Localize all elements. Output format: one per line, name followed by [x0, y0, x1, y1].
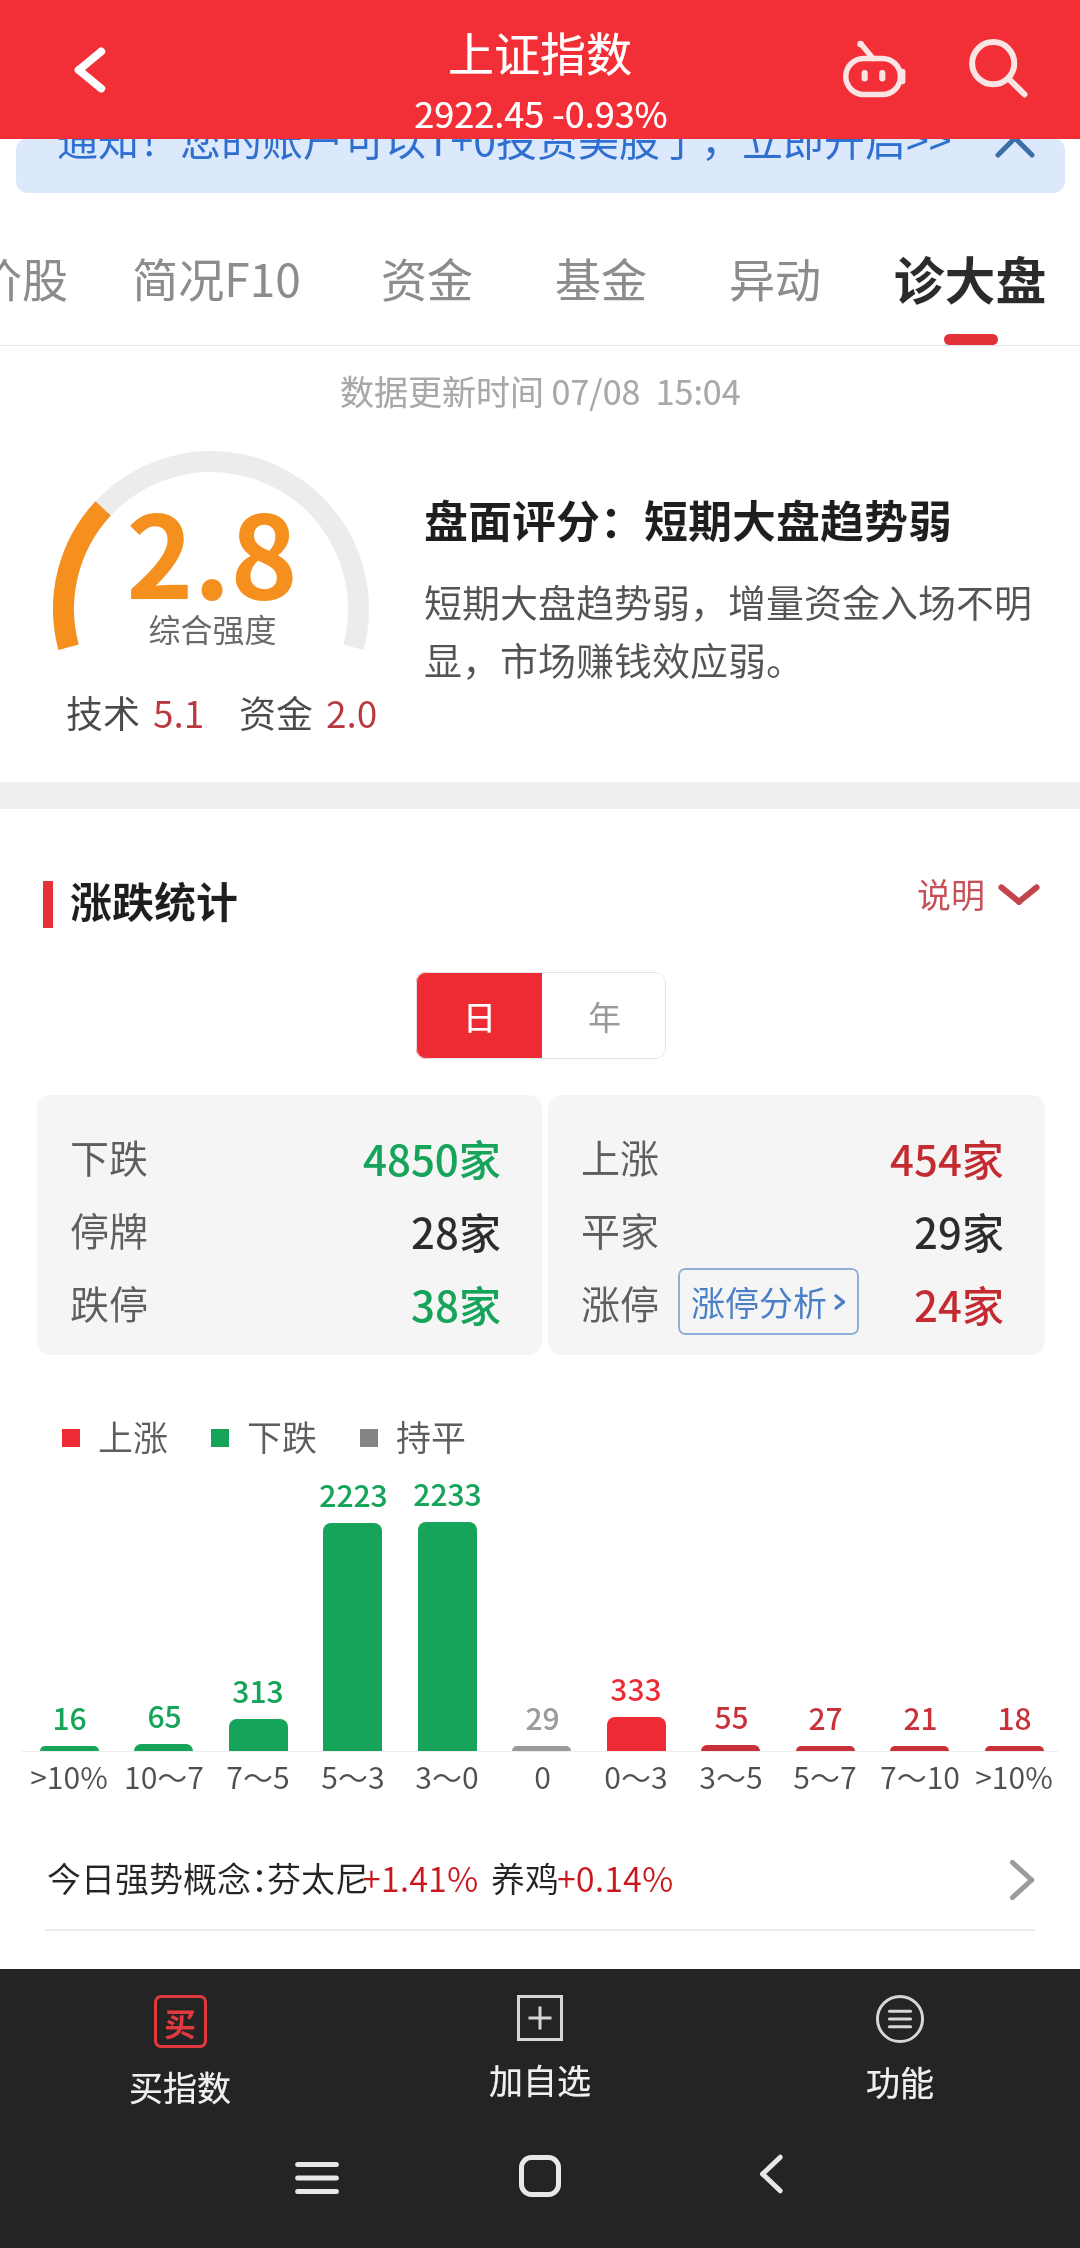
button[interactable]: 基金 — [513, 226, 689, 347]
staticText: 18 — [997, 1695, 1032, 1738]
staticText: 基金 — [555, 244, 647, 311]
button[interactable]: 今日强势概念： — [0, 1840, 1080, 1920]
staticText: +0.14% — [557, 1853, 674, 1902]
staticText: 涨停 — [581, 1274, 660, 1330]
staticText: 今日强势概念： — [47, 1853, 285, 1902]
staticText: 3～5 — [699, 1754, 763, 1797]
staticText: 3～0 — [415, 1754, 479, 1797]
button[interactable]: 买 — [90, 1981, 270, 2116]
staticText: 通知！您的账户可以T+0投资美股了，立即开启>> — [57, 138, 952, 163]
staticText: 加自选 — [489, 2055, 591, 2104]
button[interactable]: Back — [750, 2153, 792, 2195]
staticText: 停牌 — [70, 1201, 149, 1257]
button[interactable]: 资金 — [339, 226, 515, 347]
staticText: 0 — [534, 1754, 551, 1797]
staticText: 4850家 — [363, 1127, 501, 1188]
staticText: 诊大盘 — [893, 241, 1047, 315]
staticText: 下跌 — [70, 1128, 149, 1184]
staticText: 2233 — [413, 1471, 482, 1514]
button[interactable]: 涨停分析 — [691, 1268, 853, 1335]
staticText: 涨跌统计 — [70, 869, 239, 930]
other: More — [1000, 1858, 1044, 1902]
staticText: 21 — [903, 1695, 938, 1738]
staticText: 跌停 — [70, 1274, 149, 1330]
staticText: >10% — [30, 1754, 108, 1797]
button[interactable]: Search — [962, 32, 1038, 108]
staticText: 27 — [808, 1695, 843, 1738]
staticText: 333 — [610, 1666, 662, 1709]
button[interactable]: 加自选 — [450, 1981, 630, 2116]
staticText: 功能 — [866, 2057, 934, 2106]
button[interactable]: 日 — [416, 972, 542, 1059]
staticText: 芬太尼 — [267, 1853, 369, 1902]
staticText: 上涨 — [581, 1128, 660, 1184]
staticText: 综合强度 — [148, 605, 277, 651]
button[interactable]: Home — [519, 2155, 561, 2197]
staticText: 上涨 — [98, 1410, 169, 1461]
staticText: 涨停分析 — [691, 1277, 827, 1326]
staticText: 异动 — [729, 244, 821, 311]
button[interactable]: 诊大盘 — [882, 226, 1058, 347]
button[interactable]: 年 — [542, 972, 666, 1059]
staticText: 2.8 — [126, 467, 298, 632]
button[interactable]: 简况F10 — [128, 226, 304, 347]
staticText: 平家 — [581, 1201, 660, 1257]
staticText: 7～5 — [226, 1754, 290, 1797]
button[interactable]: 说明 — [917, 862, 1039, 924]
button[interactable]: Recent apps — [296, 2157, 338, 2199]
staticText: 2223 — [319, 1472, 388, 1515]
staticText: 454家 — [890, 1127, 1004, 1188]
button[interactable]: 价股 — [0, 226, 110, 347]
staticText: 年 — [588, 992, 621, 1040]
staticText: 16 — [52, 1695, 87, 1738]
staticText: 0～3 — [604, 1754, 668, 1797]
staticText: 10～7 — [124, 1754, 204, 1797]
staticText: 313 — [232, 1668, 284, 1711]
staticText: 资金 — [239, 685, 313, 739]
staticText: 2.0 — [326, 685, 378, 739]
staticText: 38家 — [411, 1273, 501, 1334]
staticText: 28家 — [411, 1200, 501, 1261]
staticText: 说明 — [917, 869, 985, 918]
staticText: 资金 — [381, 244, 473, 311]
staticText: 买指数 — [129, 2062, 231, 2111]
staticText: 日 — [463, 992, 496, 1040]
staticText: 盘面评分：短期大盘趋势弱 — [424, 487, 952, 551]
staticText: 29 — [525, 1695, 560, 1738]
staticText: 5.1 — [153, 685, 205, 739]
button[interactable]: 功能 — [810, 1981, 990, 2116]
staticText: 简况F10 — [132, 244, 301, 311]
staticText: 5～3 — [321, 1754, 385, 1797]
staticText: >10% — [975, 1754, 1053, 1797]
button[interactable]: Close notification — [998, 138, 1032, 155]
staticText: 55 — [714, 1694, 749, 1737]
staticText: 7～10 — [880, 1754, 960, 1797]
staticText: 价股 — [0, 244, 68, 311]
staticText: 持平 — [396, 1410, 467, 1461]
staticText: 上证指数 — [448, 18, 632, 85]
staticText: +1.41% — [362, 1853, 479, 1902]
staticText: 短期大盘趋势弱，增量资金入场不明显，市场赚钱效应弱。 — [424, 573, 1036, 686]
staticText: 下跌 — [247, 1410, 318, 1461]
staticText: 29家 — [914, 1200, 1004, 1261]
staticText: 买 — [164, 1999, 197, 2045]
button[interactable]: 通知！您的账户可以T+0投资美股了，立即开启>> — [16, 138, 1065, 193]
staticText: 5～7 — [793, 1754, 857, 1797]
staticText: 2922.45 -0.93% — [414, 86, 668, 138]
staticText: 数据更新时间 07/08 15:04 — [340, 366, 741, 415]
button[interactable]: 异动 — [687, 226, 863, 347]
button[interactable]: AI assistant — [838, 32, 914, 108]
staticText: 65 — [147, 1693, 182, 1736]
button[interactable]: Back — [0, 0, 180, 139]
staticText: 技术 — [66, 685, 140, 739]
staticText: 24家 — [914, 1273, 1004, 1334]
staticText: 养鸡 — [491, 1853, 559, 1902]
